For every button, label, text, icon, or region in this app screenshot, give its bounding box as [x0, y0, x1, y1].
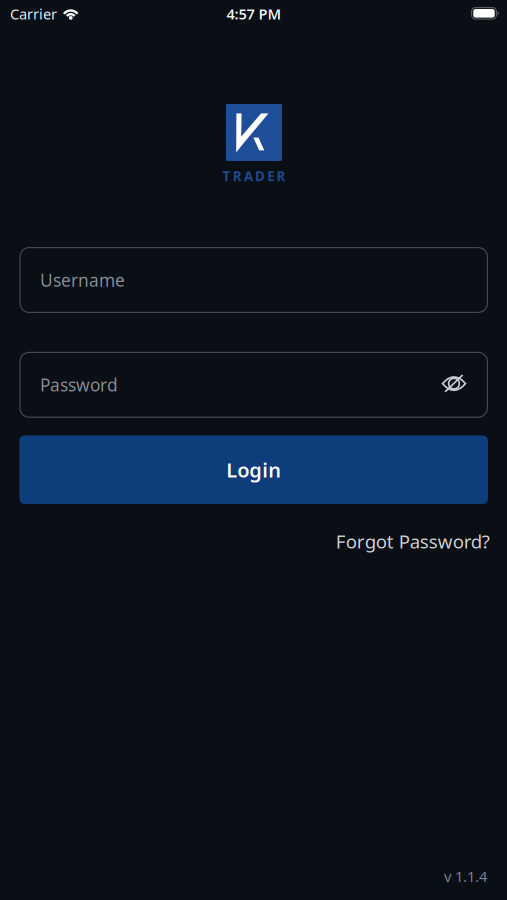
staticText: Password [40, 373, 118, 396]
staticText: R [276, 167, 285, 185]
staticText: Username [40, 268, 125, 291]
staticText: T [222, 167, 230, 185]
button[interactable]: Username [19, 247, 488, 313]
staticText: R [233, 167, 242, 185]
staticText: A [244, 167, 253, 185]
button[interactable]: Password [19, 352, 488, 418]
button[interactable]: Login [19, 435, 488, 504]
staticText: E [267, 167, 274, 185]
staticText: Login [226, 456, 281, 483]
staticText: Carrier [10, 4, 57, 23]
staticText: 4:57 PM [226, 4, 281, 23]
button[interactable] [440, 372, 468, 396]
staticText: Forgot Password? [336, 529, 490, 554]
staticText: D [255, 167, 265, 185]
staticText: v 1.1.4 [444, 867, 487, 886]
button[interactable]: Forgot Password? [336, 529, 490, 554]
